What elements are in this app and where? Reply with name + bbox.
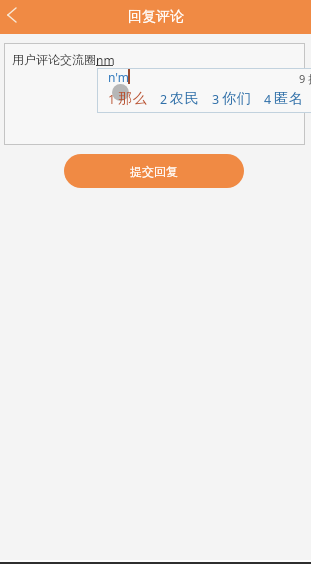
- staticText: 1: [108, 91, 116, 108]
- staticText: 匿名: [274, 90, 304, 108]
- staticText: 3: [212, 91, 220, 108]
- button[interactable]: 提交回复: [64, 154, 244, 188]
- staticText: 9 拼: [299, 71, 311, 86]
- staticText: 那么: [118, 90, 148, 108]
- staticText: n'm: [108, 69, 129, 85]
- staticText: 你们: [222, 90, 252, 108]
- button[interactable]: 1: [108, 90, 148, 108]
- button[interactable]: 用户评论交流圈: [4, 43, 305, 145]
- staticText: 回复评论: [128, 8, 184, 26]
- staticText: 4: [264, 91, 272, 108]
- staticText: 提交回复: [130, 164, 178, 179]
- staticText: 2: [160, 91, 168, 108]
- staticText: 用户评论交流圈: [12, 52, 96, 67]
- staticText: 农民: [170, 90, 200, 108]
- button[interactable]: 2: [160, 90, 200, 108]
- staticText: nm: [96, 52, 115, 68]
- button[interactable]: 4: [264, 90, 304, 108]
- button[interactable]: 3: [212, 90, 252, 108]
- button[interactable]: Back: [0, 0, 30, 34]
